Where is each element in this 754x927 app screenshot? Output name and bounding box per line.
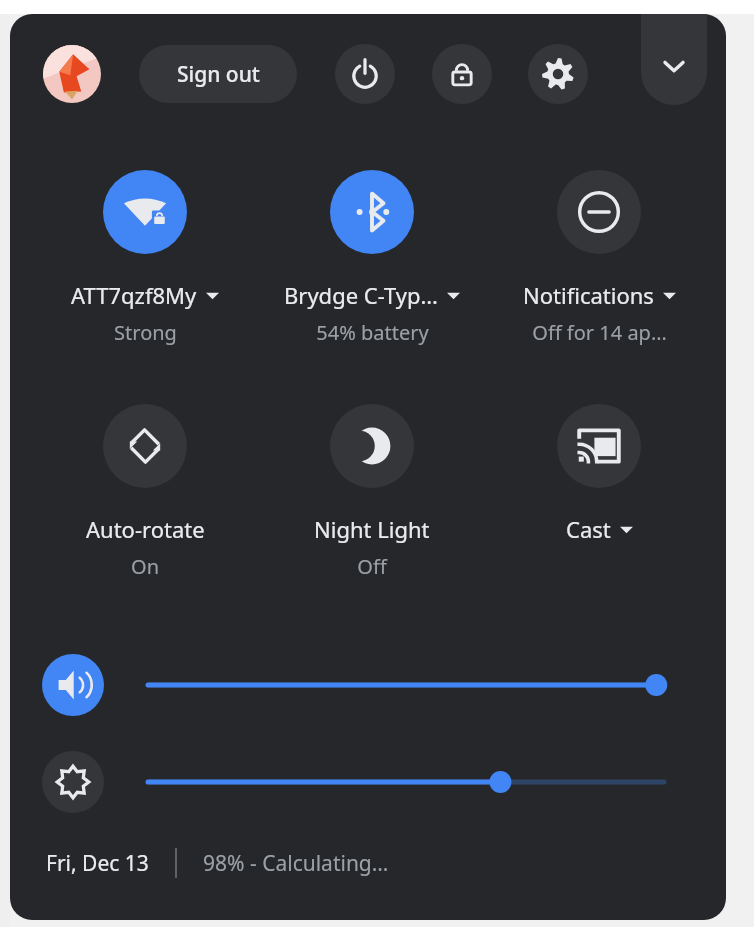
staticText: Off <box>357 553 387 580</box>
staticText: Strong <box>114 319 177 346</box>
button[interactable]: Volume <box>42 642 702 728</box>
other: Volume <box>42 654 104 716</box>
button[interactable]: Cast <box>494 404 704 544</box>
staticText: 98% - Calculating… <box>203 849 389 878</box>
button[interactable]: Settings <box>528 44 588 104</box>
staticText: On <box>131 553 159 580</box>
staticText: Brydge C-Typ… <box>284 280 438 310</box>
button[interactable]: Lock <box>432 44 492 104</box>
button[interactable]: Auto-rotate <box>40 404 250 580</box>
staticText: Sign out <box>177 60 260 89</box>
button[interactable]: Notifications <box>494 170 704 346</box>
button[interactable]: Collapse <box>641 14 707 105</box>
staticText: Fri, Dec 13 <box>46 849 149 878</box>
button[interactable]: Wi-Fi ATT7qzf8My <box>40 170 250 346</box>
staticText: ATT7qzf8My <box>71 280 197 310</box>
staticText: Off for 14 ap… <box>532 319 667 346</box>
button[interactable]: 98% - Calculating… <box>199 849 393 878</box>
other: Brightness <box>42 751 104 813</box>
staticText: 54% battery <box>316 319 429 346</box>
button[interactable]: Fri, Dec 13 <box>42 849 153 878</box>
staticText: Cast <box>566 514 611 544</box>
button[interactable]: Account avatar <box>43 45 101 103</box>
button[interactable]: Power <box>335 44 395 104</box>
button[interactable]: Night Light <box>267 404 477 580</box>
button[interactable]: Sign out <box>139 45 297 103</box>
button[interactable]: Bluetooth Brydge <box>267 170 477 346</box>
staticText: Notifications <box>523 280 654 310</box>
staticText: Night Light <box>314 514 430 544</box>
button[interactable]: Brightness <box>42 739 702 825</box>
staticText: Auto-rotate <box>86 514 205 544</box>
